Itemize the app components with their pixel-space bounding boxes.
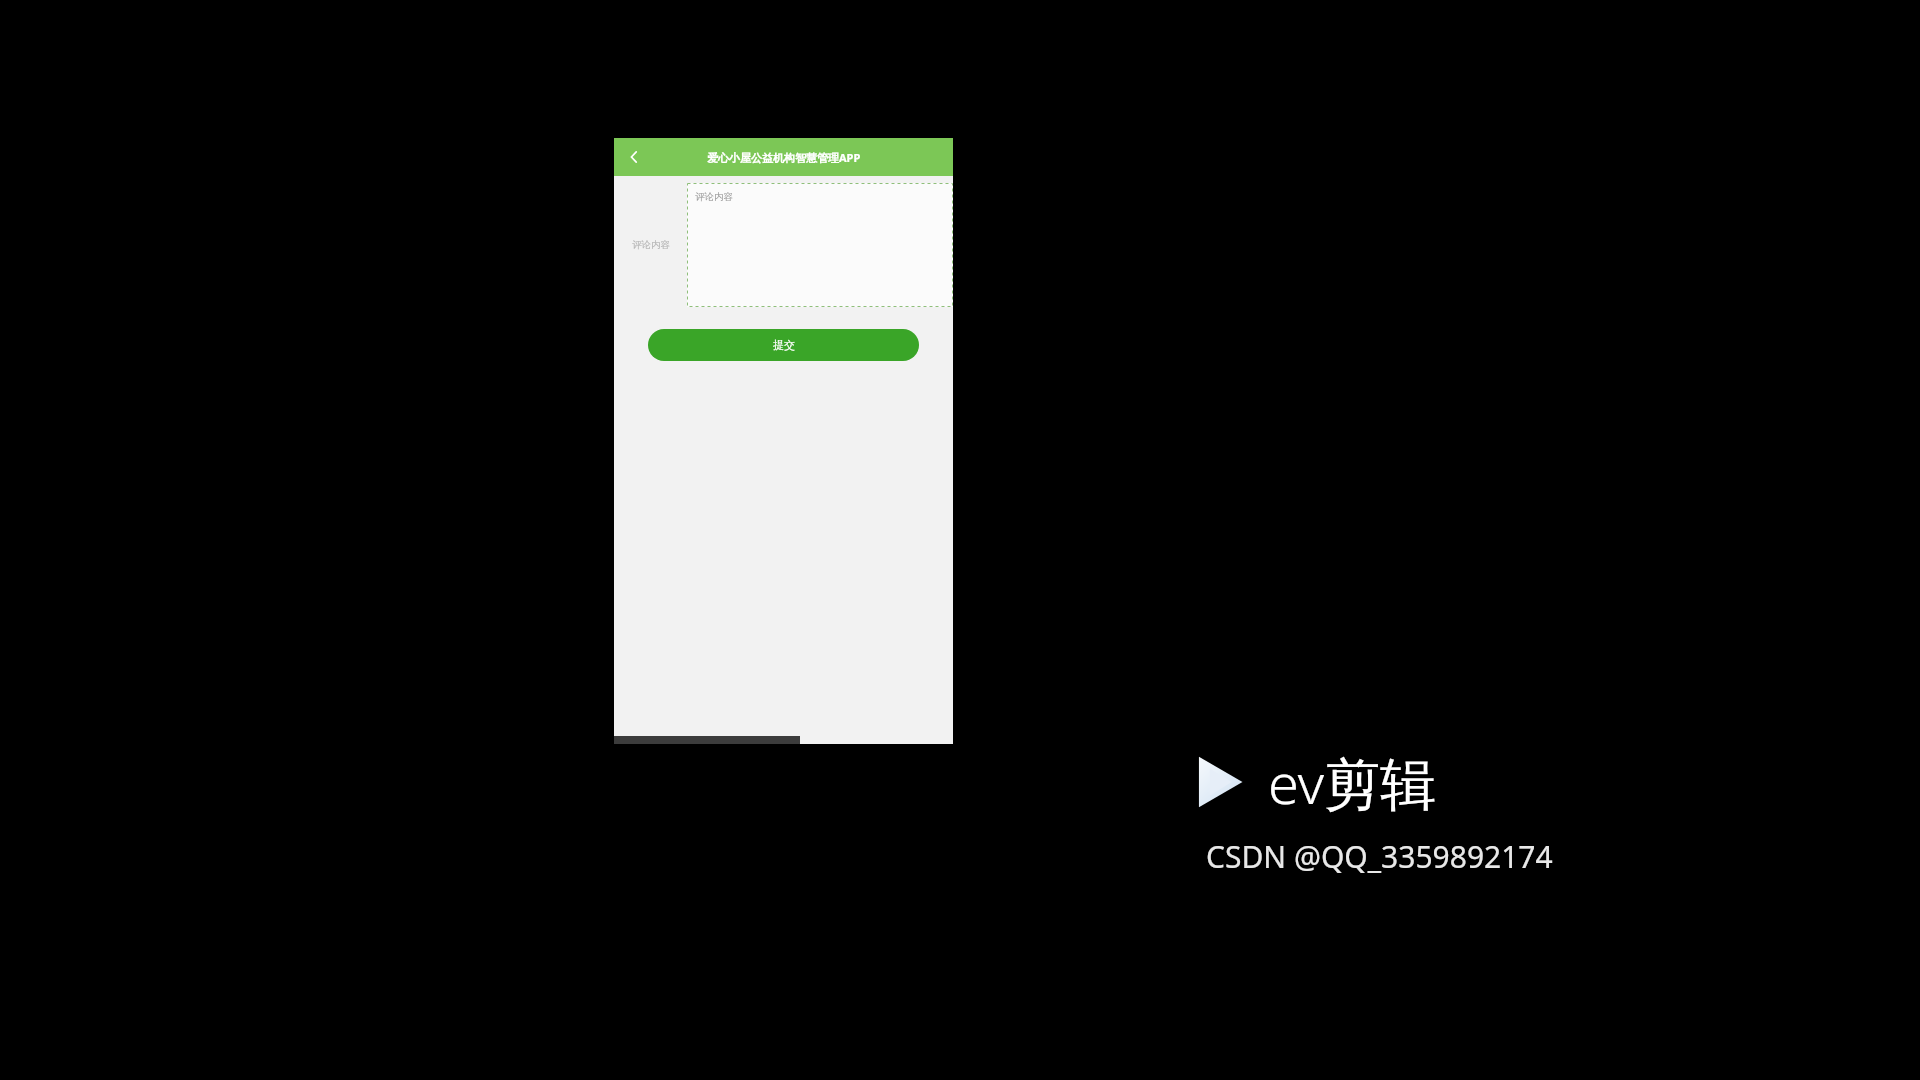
staticText: ev剪辑: [1268, 744, 1437, 820]
staticText: 爱心小屋公益机构智慧管理APP: [707, 150, 861, 165]
button[interactable]: Back: [614, 138, 654, 176]
staticText: CSDN @QQ_3359892174: [1206, 836, 1553, 877]
staticText: 提交: [773, 338, 795, 352]
button[interactable]: 评论内容: [687, 183, 953, 307]
button[interactable]: 提交: [648, 329, 919, 361]
staticText: 评论内容: [695, 191, 733, 203]
staticText: 评论内容: [632, 239, 670, 251]
